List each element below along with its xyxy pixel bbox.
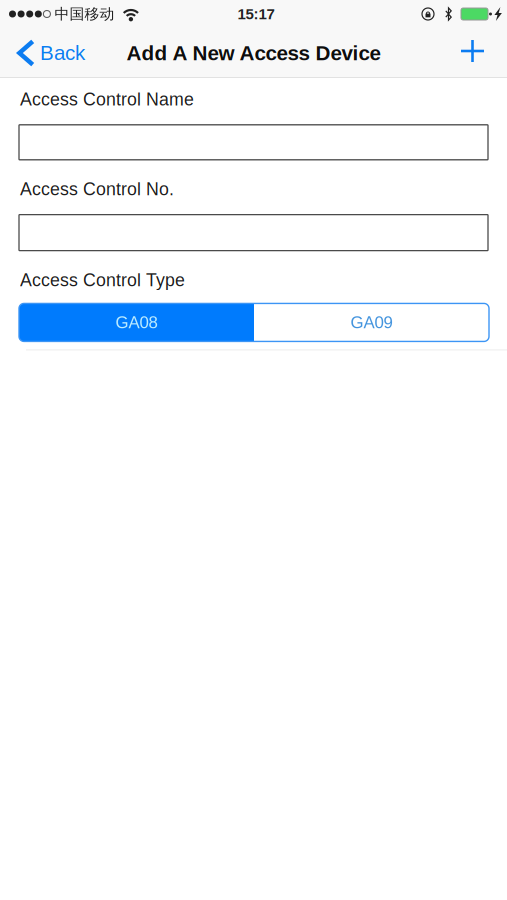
staticText: Access Control Type <box>20 270 185 290</box>
staticText: 中国移动 <box>54 5 114 23</box>
staticText: Access Control No. <box>20 179 174 199</box>
staticText: Back <box>40 41 85 64</box>
button[interactable]: Add <box>441 28 507 78</box>
button[interactable]: GA08 <box>19 303 254 341</box>
staticText: Access Control Name <box>20 89 194 109</box>
button[interactable]: Back <box>0 28 97 78</box>
staticText: 15:17 <box>237 6 274 22</box>
staticText: Add A New Access Device <box>126 41 380 65</box>
button[interactable]: GA09 <box>254 303 489 341</box>
staticText: GA08 <box>115 313 157 332</box>
staticText: GA09 <box>350 313 392 332</box>
